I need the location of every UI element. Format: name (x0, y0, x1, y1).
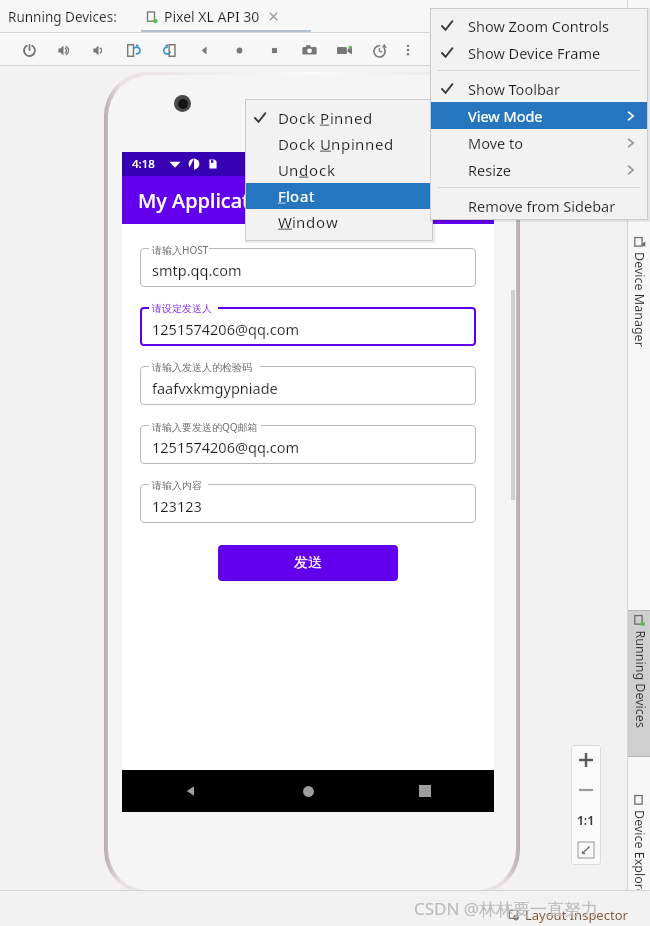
staticText: Device Manager (631, 252, 648, 347)
button[interactable]: Show Device Frame (430, 39, 648, 66)
staticText: View Mode (468, 106, 543, 126)
button[interactable]: Fit to screen (571, 835, 601, 865)
staticText: My Application (138, 187, 280, 214)
staticText: 请设定发送人 (152, 302, 212, 315)
button[interactable]: 请输入内容 (140, 477, 476, 523)
staticText: Show Device Frame (468, 43, 601, 63)
staticText: 1251574206@qq.com (152, 319, 299, 339)
staticText: 请输入内容 (152, 479, 202, 492)
staticText: Pixel XL API 30 (164, 7, 260, 26)
button[interactable]: Recent apps (408, 774, 442, 808)
staticText: n (344, 108, 354, 128)
staticText: t (309, 186, 315, 206)
staticText: 1251574206@qq.com (152, 437, 299, 457)
staticText: U (278, 160, 289, 180)
button[interactable]: D (245, 105, 433, 131)
button[interactable]: More (397, 39, 419, 61)
button[interactable]: Move to (430, 129, 648, 156)
staticText: o (290, 186, 300, 206)
button[interactable]: 请输入HOST (140, 241, 476, 287)
button[interactable]: 请输入发送人的检验码 (140, 359, 476, 405)
staticText: k (307, 134, 316, 154)
button[interactable]: Actual size (571, 805, 601, 835)
staticText: 请输入HOST (152, 243, 209, 257)
button[interactable]: Running Devices (628, 610, 650, 756)
button[interactable]: 请设定发送人 (140, 300, 476, 346)
button[interactable]: Screenshot (292, 36, 327, 64)
other: Close tab (268, 11, 279, 22)
staticText: 请输入发送人的检验码 (152, 361, 252, 374)
staticText: 123123 (152, 496, 202, 516)
staticText: P (320, 108, 330, 128)
staticText: Running Devices (631, 630, 648, 728)
staticText: l (286, 186, 290, 206)
button[interactable]: Show Zoom Controls (430, 12, 648, 39)
button[interactable]: Device Manager (628, 232, 650, 370)
button[interactable]: Device Explorer (628, 790, 650, 926)
button[interactable]: Remove from Sidebar (430, 192, 648, 219)
staticText: smtp.qq.com (152, 260, 242, 280)
staticText: n (296, 212, 306, 232)
staticText: Device Explorer (631, 810, 648, 901)
button[interactable]: U (245, 157, 433, 183)
staticText: n (289, 160, 299, 180)
button[interactable]: Home (291, 774, 325, 808)
staticText: n (355, 134, 365, 154)
staticText: o (316, 212, 326, 232)
button[interactable]: Pixel XL API 30 (145, 7, 279, 26)
button[interactable]: Zoom in (571, 745, 601, 775)
button[interactable]: Home (222, 36, 257, 64)
staticText: d (363, 108, 373, 128)
button[interactable]: Show Toolbar (430, 75, 648, 102)
staticText: Layout Inspector (525, 906, 628, 924)
staticText: c (319, 160, 327, 180)
staticText: D (278, 108, 289, 128)
staticText: Show Toolbar (468, 79, 560, 99)
staticText: Remove from Sidebar (468, 196, 616, 216)
staticText: 1:1 (577, 812, 595, 828)
staticText: p (341, 134, 351, 154)
staticText: a (300, 186, 309, 206)
button[interactable]: 请输入要发送的QQ邮箱 (140, 418, 476, 464)
staticText: i (292, 212, 296, 232)
button[interactable]: Back (187, 36, 222, 64)
button[interactable]: Layout Inspector (508, 906, 628, 924)
staticText: c (299, 134, 307, 154)
button[interactable]: W (245, 209, 433, 235)
staticText: 发送 (294, 554, 322, 572)
staticText: c (299, 108, 307, 128)
button[interactable]: Resize (430, 156, 648, 183)
staticText: n (365, 134, 375, 154)
staticText: Move to (468, 133, 523, 153)
staticText: d (299, 160, 309, 180)
button[interactable]: Power (12, 36, 47, 64)
staticText: n (331, 134, 341, 154)
staticText: k (327, 160, 336, 180)
button[interactable]: Rotate right (152, 36, 187, 64)
button[interactable]: Rotate left (117, 36, 152, 64)
button[interactable]: View Mode (430, 102, 648, 129)
staticText: d (384, 134, 394, 154)
staticText: w (326, 212, 338, 232)
button[interactable]: Zoom out (571, 775, 601, 805)
button[interactable]: F (245, 183, 433, 209)
button[interactable]: Back (174, 774, 208, 808)
button[interactable]: D (245, 131, 433, 157)
staticText: Resize (468, 160, 511, 180)
button[interactable]: Volume down (82, 36, 117, 64)
staticText: Running Devices: (8, 8, 117, 26)
staticText: o (289, 108, 299, 128)
staticText: CSDN @林林要一直努力 (414, 897, 599, 920)
button[interactable]: History (362, 36, 397, 64)
button[interactable]: Record screen (327, 36, 362, 64)
staticText: o (289, 134, 299, 154)
button[interactable]: Volume up (47, 36, 82, 64)
button[interactable]: 发送 (218, 545, 398, 581)
button[interactable]: Overview (257, 36, 292, 64)
staticText: e (354, 108, 363, 128)
staticText: F (278, 186, 286, 206)
staticText: i (330, 108, 334, 128)
staticText: o (309, 160, 319, 180)
staticText: 请输入要发送的QQ邮箱 (152, 420, 258, 434)
